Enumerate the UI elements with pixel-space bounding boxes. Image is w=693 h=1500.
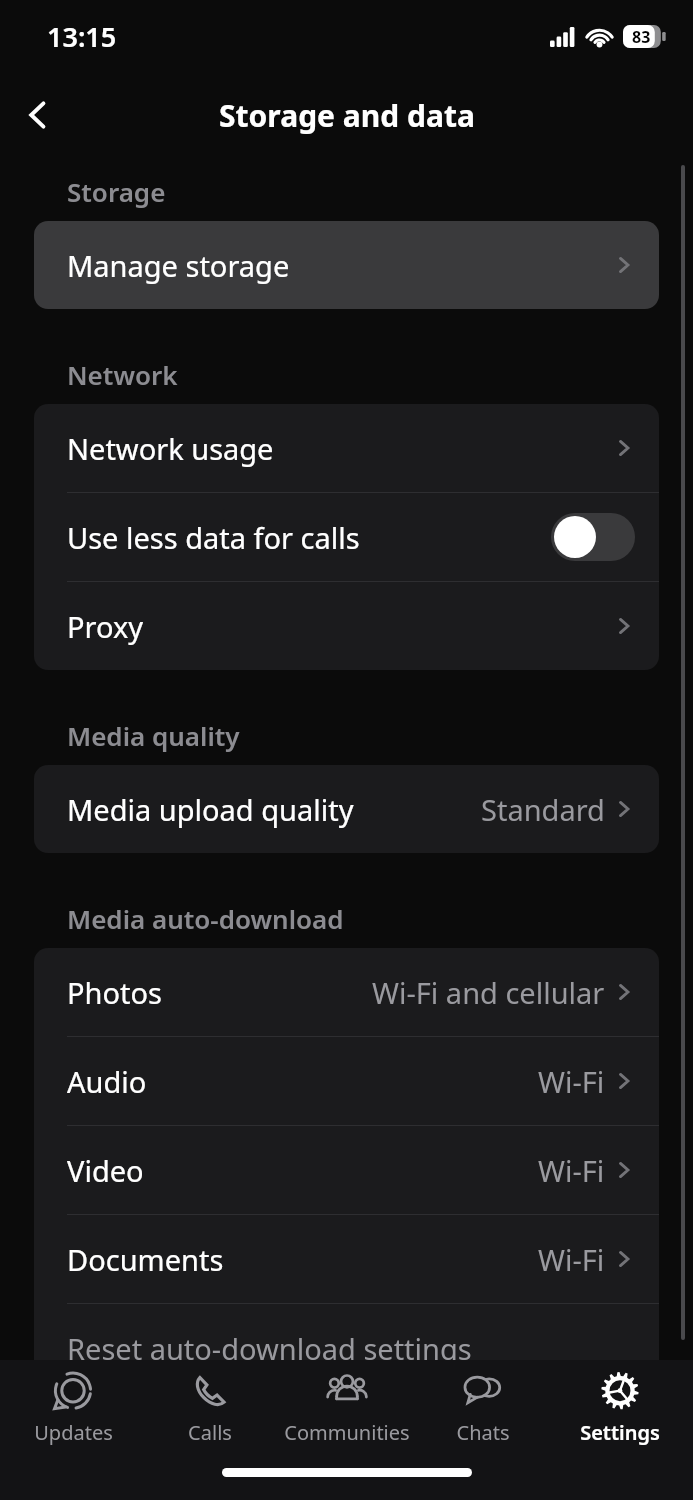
staticText: Settings: [580, 1419, 660, 1446]
button[interactable]: Reset auto-download settings: [34, 1304, 659, 1392]
button[interactable]: Chats: [419, 1370, 547, 1446]
button[interactable]: Media upload quality: [34, 765, 659, 853]
staticText: Use less data for calls: [67, 518, 360, 557]
staticText: Calls: [188, 1419, 232, 1446]
staticText: Wi-Fi and cellular: [372, 973, 605, 1012]
staticText: Communities: [284, 1419, 410, 1446]
staticText: Media auto-download: [67, 901, 344, 936]
button[interactable]: Settings: [556, 1370, 684, 1446]
staticText: Photos: [67, 973, 162, 1012]
button[interactable]: Documents: [34, 1215, 659, 1303]
staticText: Storage and data: [219, 95, 475, 136]
staticText: Network: [67, 357, 178, 392]
button[interactable]: Manage storage: [34, 221, 659, 309]
staticText: Network usage: [67, 429, 274, 468]
staticText: Media quality: [67, 718, 240, 753]
staticText: Chats: [456, 1419, 510, 1446]
staticText: Storage: [67, 174, 166, 209]
staticText: Proxy: [67, 607, 144, 646]
button[interactable]: Network usage: [34, 404, 659, 492]
staticText: Manage storage: [67, 246, 290, 285]
button[interactable]: Proxy: [34, 582, 659, 670]
staticText: Wi-Fi: [538, 1240, 605, 1279]
button[interactable]: Back: [8, 85, 68, 145]
button[interactable]: Audio: [34, 1037, 659, 1125]
staticText: Audio: [67, 1062, 147, 1101]
button[interactable]: Video: [34, 1126, 659, 1214]
staticText: Standard: [481, 790, 605, 829]
staticText: Wi-Fi: [538, 1062, 605, 1101]
staticText: Reset auto-download settings: [67, 1329, 472, 1368]
staticText: Wi-Fi: [538, 1151, 605, 1190]
staticText: Video: [67, 1151, 144, 1190]
staticText: Documents: [67, 1240, 224, 1279]
staticText: Media upload quality: [67, 790, 354, 829]
button[interactable]: Use less data for calls: [551, 513, 635, 561]
button[interactable]: Updates: [9, 1370, 137, 1446]
button[interactable]: Photos: [34, 948, 659, 1036]
staticText: 13:15: [47, 18, 117, 55]
staticText: 83: [632, 26, 651, 48]
staticText: Updates: [34, 1419, 113, 1446]
button[interactable]: Use less data for calls: [34, 493, 659, 581]
button[interactable]: Communities: [283, 1370, 411, 1446]
button[interactable]: Calls: [146, 1370, 274, 1446]
